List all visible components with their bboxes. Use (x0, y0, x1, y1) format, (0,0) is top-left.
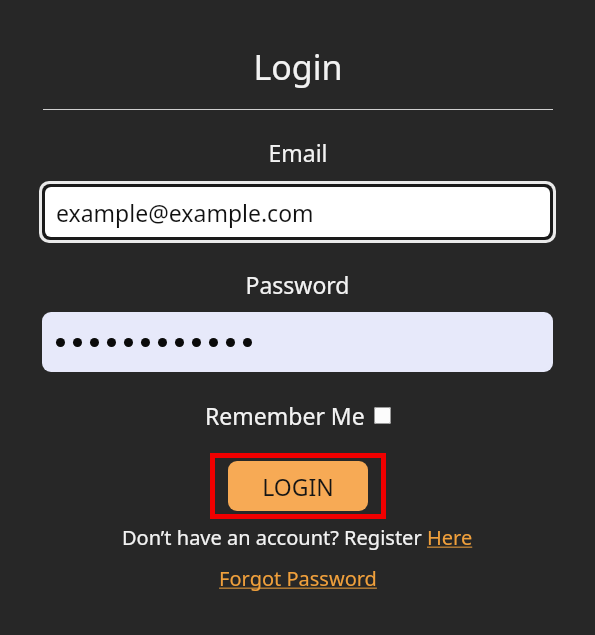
staticText: Email (268, 137, 328, 168)
button[interactable] (42, 312, 553, 372)
staticText: Forgot Password (219, 565, 377, 592)
staticText: Remember Me (205, 400, 365, 431)
staticText: example@example.com (56, 197, 314, 228)
staticText: Password (245, 269, 350, 300)
button[interactable]: LOGIN (215, 458, 381, 514)
staticText: Login (253, 44, 343, 90)
button[interactable]: Forgot Password (219, 565, 377, 592)
button[interactable]: Here (427, 524, 473, 551)
staticText: LOGIN (262, 471, 334, 502)
staticText: Here (427, 524, 473, 551)
button[interactable]: example@example.com (45, 187, 550, 237)
other: Remember Me checkbox (374, 407, 391, 424)
staticText: Don’t have an account? Register (122, 524, 427, 551)
button[interactable]: Remember Me (201, 398, 395, 433)
